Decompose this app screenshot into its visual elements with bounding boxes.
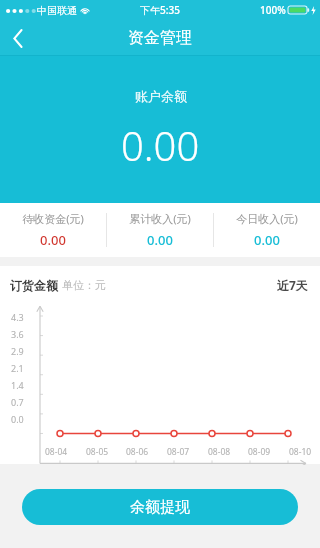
staticText: 0.00 xyxy=(254,231,280,249)
staticText: 0.00 xyxy=(147,231,173,249)
staticText: 2.9 xyxy=(11,345,24,357)
staticText: 订货金额 xyxy=(10,278,58,293)
staticText: 100% xyxy=(260,3,286,17)
button[interactable]: 余额提现 xyxy=(22,489,298,525)
staticText: 资金管理 xyxy=(128,28,192,48)
staticText: 3.6 xyxy=(11,328,24,340)
staticText: 中国联通 xyxy=(37,4,77,17)
button[interactable]: 返回 xyxy=(0,20,36,56)
staticText: 0.00 xyxy=(40,231,66,249)
staticText: 账户余额 xyxy=(135,88,187,104)
staticText: 08-10 xyxy=(289,446,312,458)
button[interactable]: 近7天 xyxy=(277,277,308,293)
staticText: 下午5:35 xyxy=(140,3,180,17)
button[interactable]: 待收资金(元) xyxy=(0,203,106,257)
staticText: 1.4 xyxy=(11,379,24,391)
staticText: 08-06 xyxy=(126,446,149,458)
staticText: 近7天 xyxy=(277,277,308,293)
staticText: 08-09 xyxy=(248,446,271,458)
staticText: 余额提现 xyxy=(130,498,190,517)
staticText: 08-07 xyxy=(167,446,190,458)
staticText: 今日收入(元) xyxy=(236,211,298,226)
staticText: 待收资金(元) xyxy=(22,211,84,226)
staticText: 单位：元 xyxy=(62,278,106,292)
button[interactable]: 今日收入(元) xyxy=(214,203,320,257)
staticText: 0.0 xyxy=(11,413,24,425)
staticText: 08-04 xyxy=(45,446,68,458)
staticText: 08-08 xyxy=(208,446,231,458)
staticText: 4.3 xyxy=(11,311,24,323)
button[interactable]: 累计收入(元) xyxy=(107,203,213,257)
staticText: 累计收入(元) xyxy=(129,211,191,226)
staticText: 0.00 xyxy=(121,118,200,172)
staticText: 08-05 xyxy=(86,446,109,458)
staticText: 0.7 xyxy=(11,396,24,408)
staticText: 2.1 xyxy=(11,362,24,374)
